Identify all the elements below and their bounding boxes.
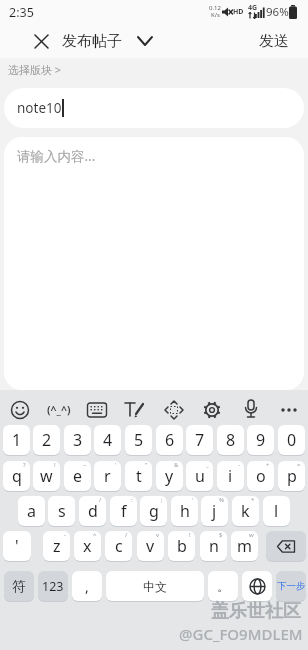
staticText: c <box>115 535 123 557</box>
button[interactable] <box>266 531 306 561</box>
button[interactable]: 0 <box>278 425 305 455</box>
staticText: 发布帖子 <box>62 32 122 51</box>
button[interactable]: v <box>137 531 164 561</box>
staticText: ? <box>23 461 26 469</box>
button[interactable]: s <box>48 496 75 526</box>
button[interactable]: c <box>105 531 132 561</box>
button[interactable]: 符 <box>4 571 34 601</box>
button[interactable]: 2 <box>33 425 60 455</box>
button[interactable] <box>82 395 112 425</box>
button[interactable]: 。 <box>208 571 238 601</box>
button[interactable]: 1 <box>3 425 30 455</box>
staticText: note10 <box>17 99 62 117</box>
staticText: = <box>297 461 301 469</box>
button[interactable] <box>197 395 227 425</box>
button[interactable]: 下一步 <box>276 571 306 601</box>
staticText: w <box>249 531 254 539</box>
button[interactable]: 9 <box>247 425 274 455</box>
button[interactable] <box>242 571 272 601</box>
staticText: ' <box>192 496 194 504</box>
staticText: t <box>136 465 142 487</box>
button[interactable]: d <box>79 496 106 526</box>
staticText: ! <box>54 461 56 469</box>
button[interactable]: (^_^) <box>44 395 74 425</box>
button[interactable]: 8 <box>217 425 244 455</box>
staticText: 下一步 <box>277 580 306 592</box>
staticText: r <box>104 465 111 487</box>
staticText: e <box>73 465 83 487</box>
staticText: v <box>156 531 160 539</box>
staticText: @GC_FO9MDLEM <box>179 624 303 644</box>
staticText: s <box>58 500 66 522</box>
button[interactable]: k <box>232 496 259 526</box>
button[interactable]: f <box>110 496 137 526</box>
button[interactable]: u <box>186 461 213 491</box>
staticText: 0.12 <box>209 4 221 12</box>
button[interactable] <box>5 395 35 425</box>
staticText: 请输入内容... <box>17 147 96 165</box>
button[interactable]: 选择版块 > <box>8 58 128 80</box>
staticText: , <box>85 577 89 596</box>
button[interactable] <box>120 395 150 425</box>
button[interactable]: 中文 <box>106 571 204 601</box>
staticText: 4G <box>248 3 258 12</box>
button[interactable]: b <box>168 531 195 561</box>
button[interactable]: 5 <box>125 425 152 455</box>
button[interactable] <box>28 28 54 54</box>
button[interactable]: 7 <box>186 425 213 455</box>
button[interactable]: h <box>171 496 198 526</box>
button[interactable]: z <box>43 531 70 561</box>
staticText: 2:35 <box>9 4 34 21</box>
button[interactable]: 123 <box>38 571 68 601</box>
button[interactable]: g <box>140 496 167 526</box>
button[interactable]: , <box>72 571 102 601</box>
button[interactable]: w <box>33 461 60 491</box>
button[interactable] <box>236 395 266 425</box>
staticText: 6 <box>165 429 175 451</box>
button[interactable]: 请输入内容... <box>4 137 304 390</box>
button[interactable] <box>134 30 156 52</box>
button[interactable]: e <box>64 461 91 491</box>
staticText: 2 <box>42 429 52 451</box>
staticText: ^ <box>93 531 97 539</box>
button[interactable]: 6 <box>156 425 183 455</box>
staticText: ' <box>115 461 117 469</box>
staticText: / <box>125 531 128 539</box>
staticText: 4 <box>103 429 113 451</box>
button[interactable]: j <box>201 496 228 526</box>
staticText: " <box>145 461 148 469</box>
staticText: ! <box>189 531 191 539</box>
button[interactable]: p <box>278 461 305 491</box>
staticText: b <box>177 535 187 557</box>
button[interactable]: r <box>94 461 121 491</box>
button[interactable]: ' <box>3 531 31 561</box>
button[interactable] <box>274 395 304 425</box>
button[interactable]: x <box>74 531 101 561</box>
button[interactable]: m <box>231 531 258 561</box>
staticText: _ <box>206 461 209 469</box>
button[interactable]: 发送 <box>252 30 296 52</box>
staticText: w <box>40 465 53 487</box>
staticText: o <box>256 465 266 487</box>
button[interactable] <box>159 395 189 425</box>
staticText: i <box>228 465 233 487</box>
button[interactable]: note10 <box>4 88 304 128</box>
button[interactable]: a <box>18 496 45 526</box>
button[interactable]: i <box>217 461 244 491</box>
staticText: ' <box>15 535 19 557</box>
button[interactable]: 4 <box>94 425 121 455</box>
button[interactable]: n <box>200 531 227 561</box>
staticText: a <box>27 500 36 522</box>
staticText: 选择版块 > <box>8 62 62 77</box>
staticText: x <box>83 535 92 557</box>
staticText: 符 <box>12 578 26 595</box>
staticText: 发送 <box>259 32 289 51</box>
staticText: g <box>149 500 159 522</box>
button[interactable]: y <box>156 461 183 491</box>
button[interactable]: 3 <box>64 425 91 455</box>
button[interactable]: t <box>125 461 152 491</box>
button[interactable]: o <box>247 461 274 491</box>
staticText: $ <box>219 531 223 539</box>
button[interactable]: l <box>263 496 290 526</box>
button[interactable]: q <box>3 461 30 491</box>
